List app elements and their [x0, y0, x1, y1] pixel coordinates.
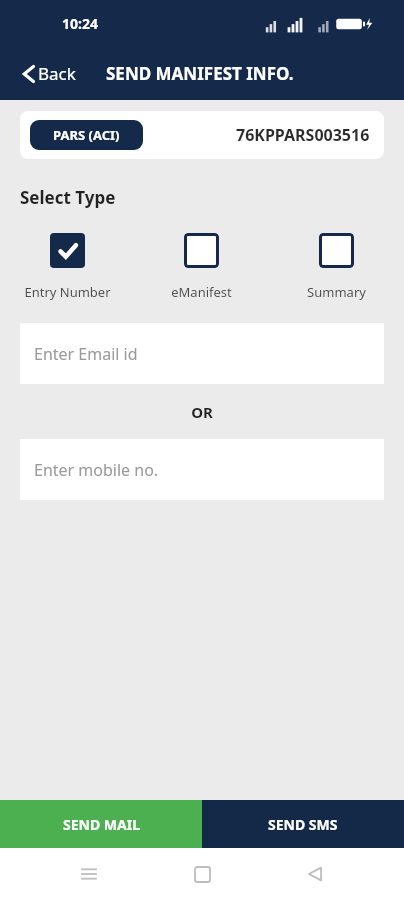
button[interactable]: SEND SMS: [202, 800, 404, 848]
button[interactable]: Entry Number: [0, 233, 134, 301]
button[interactable]: Home: [178, 850, 226, 898]
staticText: SEND MAIL: [63, 815, 140, 834]
staticText: Back: [38, 62, 76, 85]
button[interactable]: PARS (ACI): [30, 120, 143, 150]
staticText: Enter Email id: [34, 343, 138, 365]
button[interactable]: eManifest: [134, 233, 269, 301]
staticText: 10:24: [62, 14, 98, 33]
staticText: SEND MANIFEST INFO.: [106, 62, 294, 85]
button[interactable]: Back: [18, 56, 80, 91]
button[interactable]: Back: [291, 850, 339, 898]
staticText: eManifest: [171, 283, 232, 301]
staticText: SEND SMS: [268, 815, 338, 834]
staticText: Select Type: [20, 186, 116, 209]
staticText: PARS (ACI): [53, 126, 120, 144]
staticText: 76KPPARS003516: [236, 124, 370, 146]
button[interactable]: PARS (ACI): [20, 111, 384, 159]
button[interactable]: Enter Email id: [20, 323, 384, 384]
button[interactable]: SEND MAIL: [0, 800, 202, 848]
staticText: Enter mobile no.: [34, 459, 159, 481]
staticText: OR: [0, 402, 404, 422]
button[interactable]: Summary: [269, 233, 404, 301]
button[interactable]: Recent apps: [65, 850, 113, 898]
staticText: Summary: [307, 283, 366, 301]
staticText: Entry Number: [24, 283, 111, 301]
button[interactable]: Enter mobile no.: [20, 439, 384, 500]
